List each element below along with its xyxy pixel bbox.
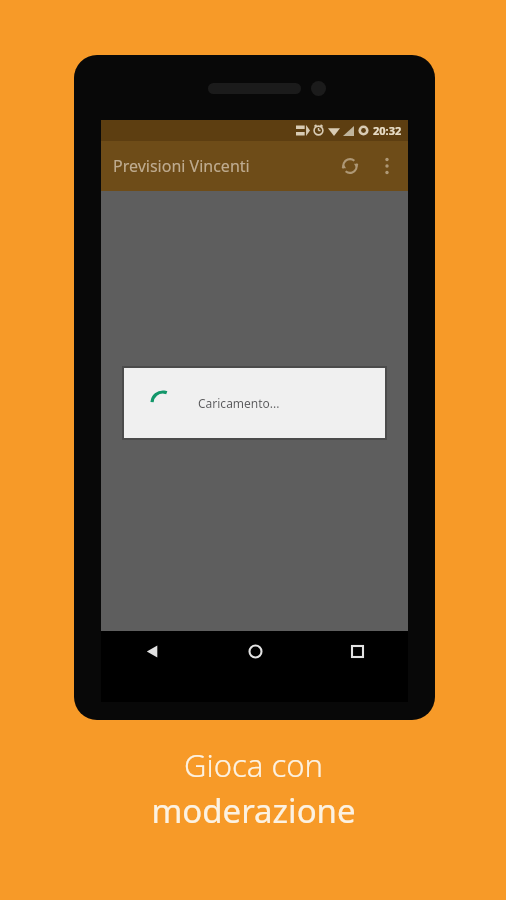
- staticText: 20:32: [373, 123, 402, 138]
- button[interactable]: Aggiorna: [330, 146, 370, 186]
- button[interactable]: Altre opzioni: [370, 149, 404, 183]
- staticText: moderazione: [151, 788, 356, 833]
- button[interactable]: Panoramica: [306, 631, 408, 671]
- button[interactable]: Caricamento...: [124, 368, 385, 438]
- staticText: Previsioni Vincenti: [113, 155, 250, 177]
- staticText: Caricamento...: [198, 395, 280, 411]
- staticText: Gioca con: [184, 744, 323, 786]
- button[interactable]: Indietro: [101, 631, 204, 671]
- button[interactable]: Home: [204, 631, 306, 671]
